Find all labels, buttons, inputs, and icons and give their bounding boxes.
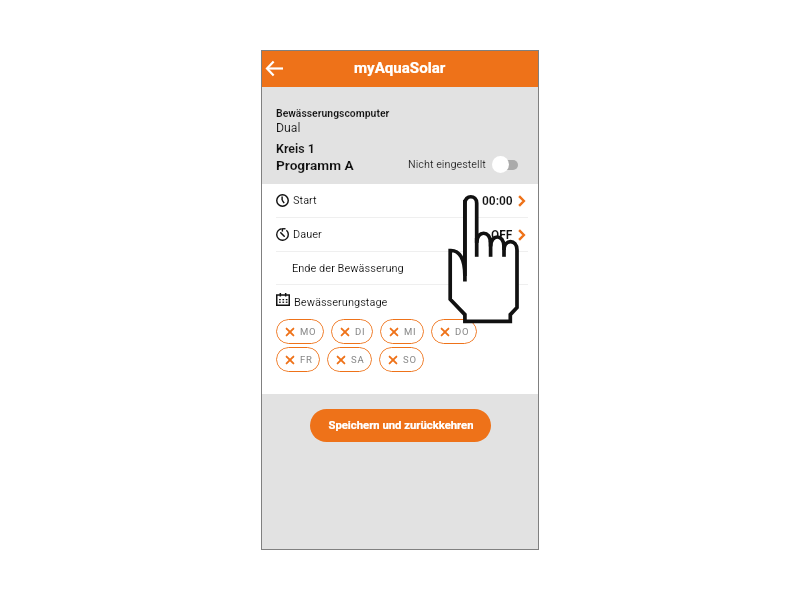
button[interactable]: DO: [431, 319, 477, 344]
staticText: SO: [403, 354, 417, 365]
staticText: Start: [293, 194, 317, 207]
staticText: FR: [300, 354, 313, 365]
button[interactable]: MI: [380, 319, 424, 344]
button[interactable]: Dauer: [261, 218, 539, 251]
staticText: Nicht eingestellt: [408, 158, 486, 171]
staticText: MO: [300, 326, 317, 337]
staticText: MI: [404, 326, 417, 337]
button[interactable]: Ende der Bewässerung: [261, 252, 539, 284]
staticText: DI: [355, 326, 366, 337]
staticText: OFF: [491, 228, 513, 242]
staticText: Bewässerungstage: [294, 296, 388, 309]
button[interactable]: DI: [331, 319, 373, 344]
staticText: Ende der Bewässerung: [292, 262, 404, 275]
button[interactable]: SO: [379, 347, 424, 372]
staticText: Dauer: [293, 228, 322, 241]
staticText: SA: [351, 354, 365, 365]
staticText: DO: [455, 326, 470, 337]
staticText: Speichern und zurückkehren: [328, 419, 474, 432]
button[interactable]: Speichern und zurückkehren: [310, 409, 491, 442]
button[interactable]: Programm aktivieren: [492, 156, 518, 173]
button[interactable]: SA: [327, 347, 372, 372]
staticText: Dual: [276, 121, 301, 135]
staticText: myAquaSolar: [354, 59, 446, 77]
button[interactable]: MO: [276, 319, 324, 344]
button[interactable]: FR: [276, 347, 320, 372]
staticText: Bewässerungscomputer: [276, 107, 390, 119]
staticText: Programm A: [276, 157, 354, 173]
button[interactable]: Back: [260, 54, 288, 82]
button[interactable]: Start: [261, 184, 539, 217]
staticText: 00:00: [482, 194, 513, 208]
staticText: Kreis 1: [276, 141, 315, 156]
